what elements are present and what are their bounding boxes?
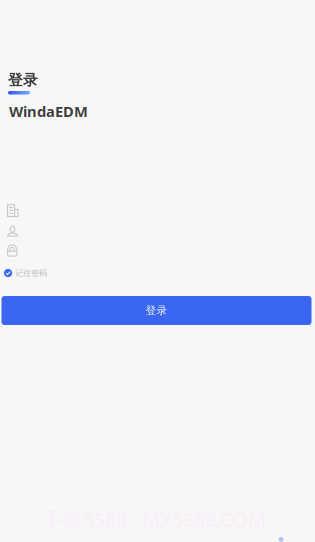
button[interactable]: Password: [7, 241, 308, 261]
button[interactable]: Company: [7, 201, 308, 221]
button[interactable]: Username: [7, 221, 308, 241]
button[interactable]: 记住密码: [7, 269, 308, 277]
staticText: WindaEDM: [9, 101, 88, 121]
staticText: 登录: [145, 304, 167, 317]
staticText: 登录: [8, 71, 38, 89]
staticText: 手游5588 · MX5588.COM: [43, 506, 266, 533]
button[interactable]: 登录: [1, 296, 311, 325]
staticText: 记住密码: [15, 268, 47, 278]
